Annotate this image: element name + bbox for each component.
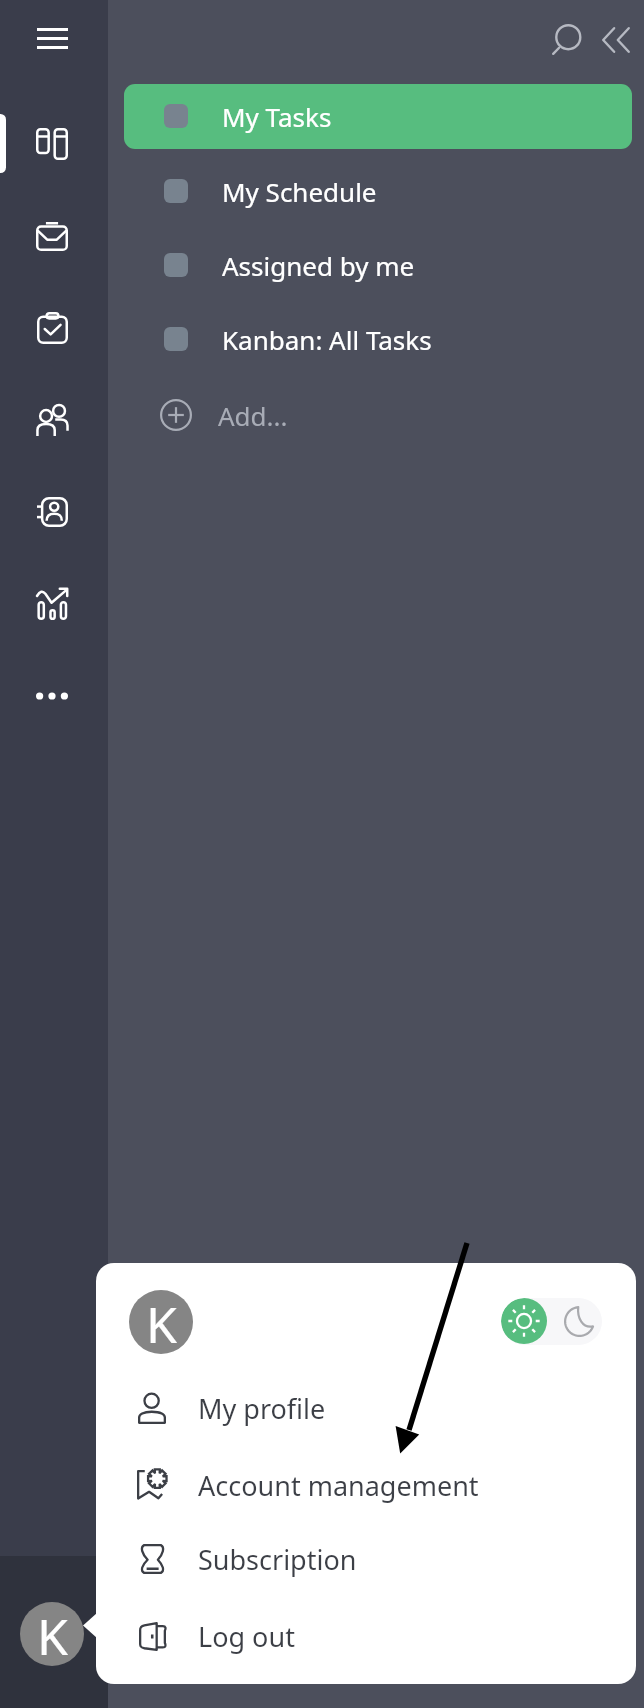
button[interactable]: Collapse	[589, 13, 642, 66]
button[interactable]: My Tasks	[124, 83, 632, 149]
staticText: K	[37, 1602, 68, 1666]
staticText: Subscription	[198, 1541, 357, 1578]
staticText: Kanban: All Tasks	[222, 322, 432, 357]
button[interactable]: Contacts	[21, 481, 83, 543]
button[interactable]: Add...	[124, 382, 632, 448]
staticText: Log out	[198, 1618, 295, 1655]
staticText: Add...	[218, 398, 288, 433]
button[interactable]: Log out	[96, 1603, 636, 1669]
button[interactable]: Boards	[21, 113, 83, 175]
button[interactable]: Kanban: All Tasks	[124, 306, 632, 372]
button[interactable]: Account management	[96, 1452, 636, 1518]
button[interactable]: Workspace	[21, 205, 83, 267]
button[interactable]: More	[21, 665, 83, 727]
button[interactable]: Search	[544, 17, 589, 62]
button[interactable]: K	[129, 1290, 193, 1354]
button[interactable]: Analytics	[21, 573, 83, 635]
button[interactable]: Assigned by me	[124, 232, 632, 298]
button[interactable]: Menu	[21, 7, 83, 69]
button[interactable]	[124, 84, 632, 149]
button[interactable]: Tasks	[21, 297, 83, 359]
button[interactable]: Subscription	[96, 1526, 636, 1592]
staticText: My Schedule	[222, 174, 377, 209]
staticText: Account management	[198, 1467, 479, 1504]
staticText: K	[146, 1290, 177, 1354]
button[interactable]: My profile	[96, 1375, 636, 1441]
button[interactable]: Account	[20, 1602, 84, 1666]
button[interactable]: My Schedule	[124, 158, 632, 224]
staticText: My profile	[198, 1390, 326, 1427]
button[interactable]: Teams	[21, 389, 83, 451]
staticText: Assigned by me	[222, 248, 415, 283]
staticText: My Tasks	[222, 99, 332, 134]
button[interactable]: Theme	[501, 1298, 602, 1345]
